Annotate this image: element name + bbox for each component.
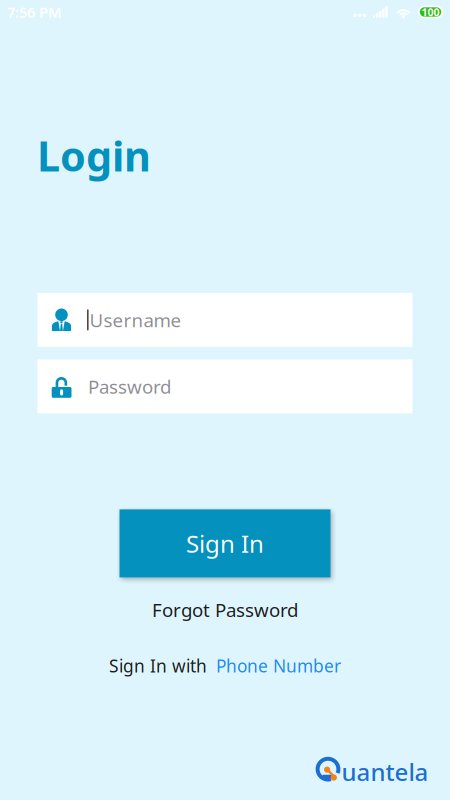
staticText: Login (37, 128, 151, 183)
staticText: uantela (341, 756, 428, 787)
staticText: Username (90, 307, 182, 332)
staticText: Phone Number (216, 654, 341, 677)
staticText: Password (88, 374, 171, 399)
staticText: Sign In (186, 527, 264, 559)
button[interactable]: Sign In (119, 509, 330, 577)
button[interactable]: Username (37, 293, 412, 347)
button[interactable]: Forgot Password (142, 592, 308, 627)
staticText: Forgot Password (152, 597, 298, 622)
staticText: Sign In with (109, 654, 207, 677)
staticText: 100 (421, 5, 439, 19)
button[interactable]: Phone Number (216, 654, 341, 677)
staticText: 7:56 PM (7, 2, 62, 22)
button[interactable]: Password (37, 359, 412, 413)
